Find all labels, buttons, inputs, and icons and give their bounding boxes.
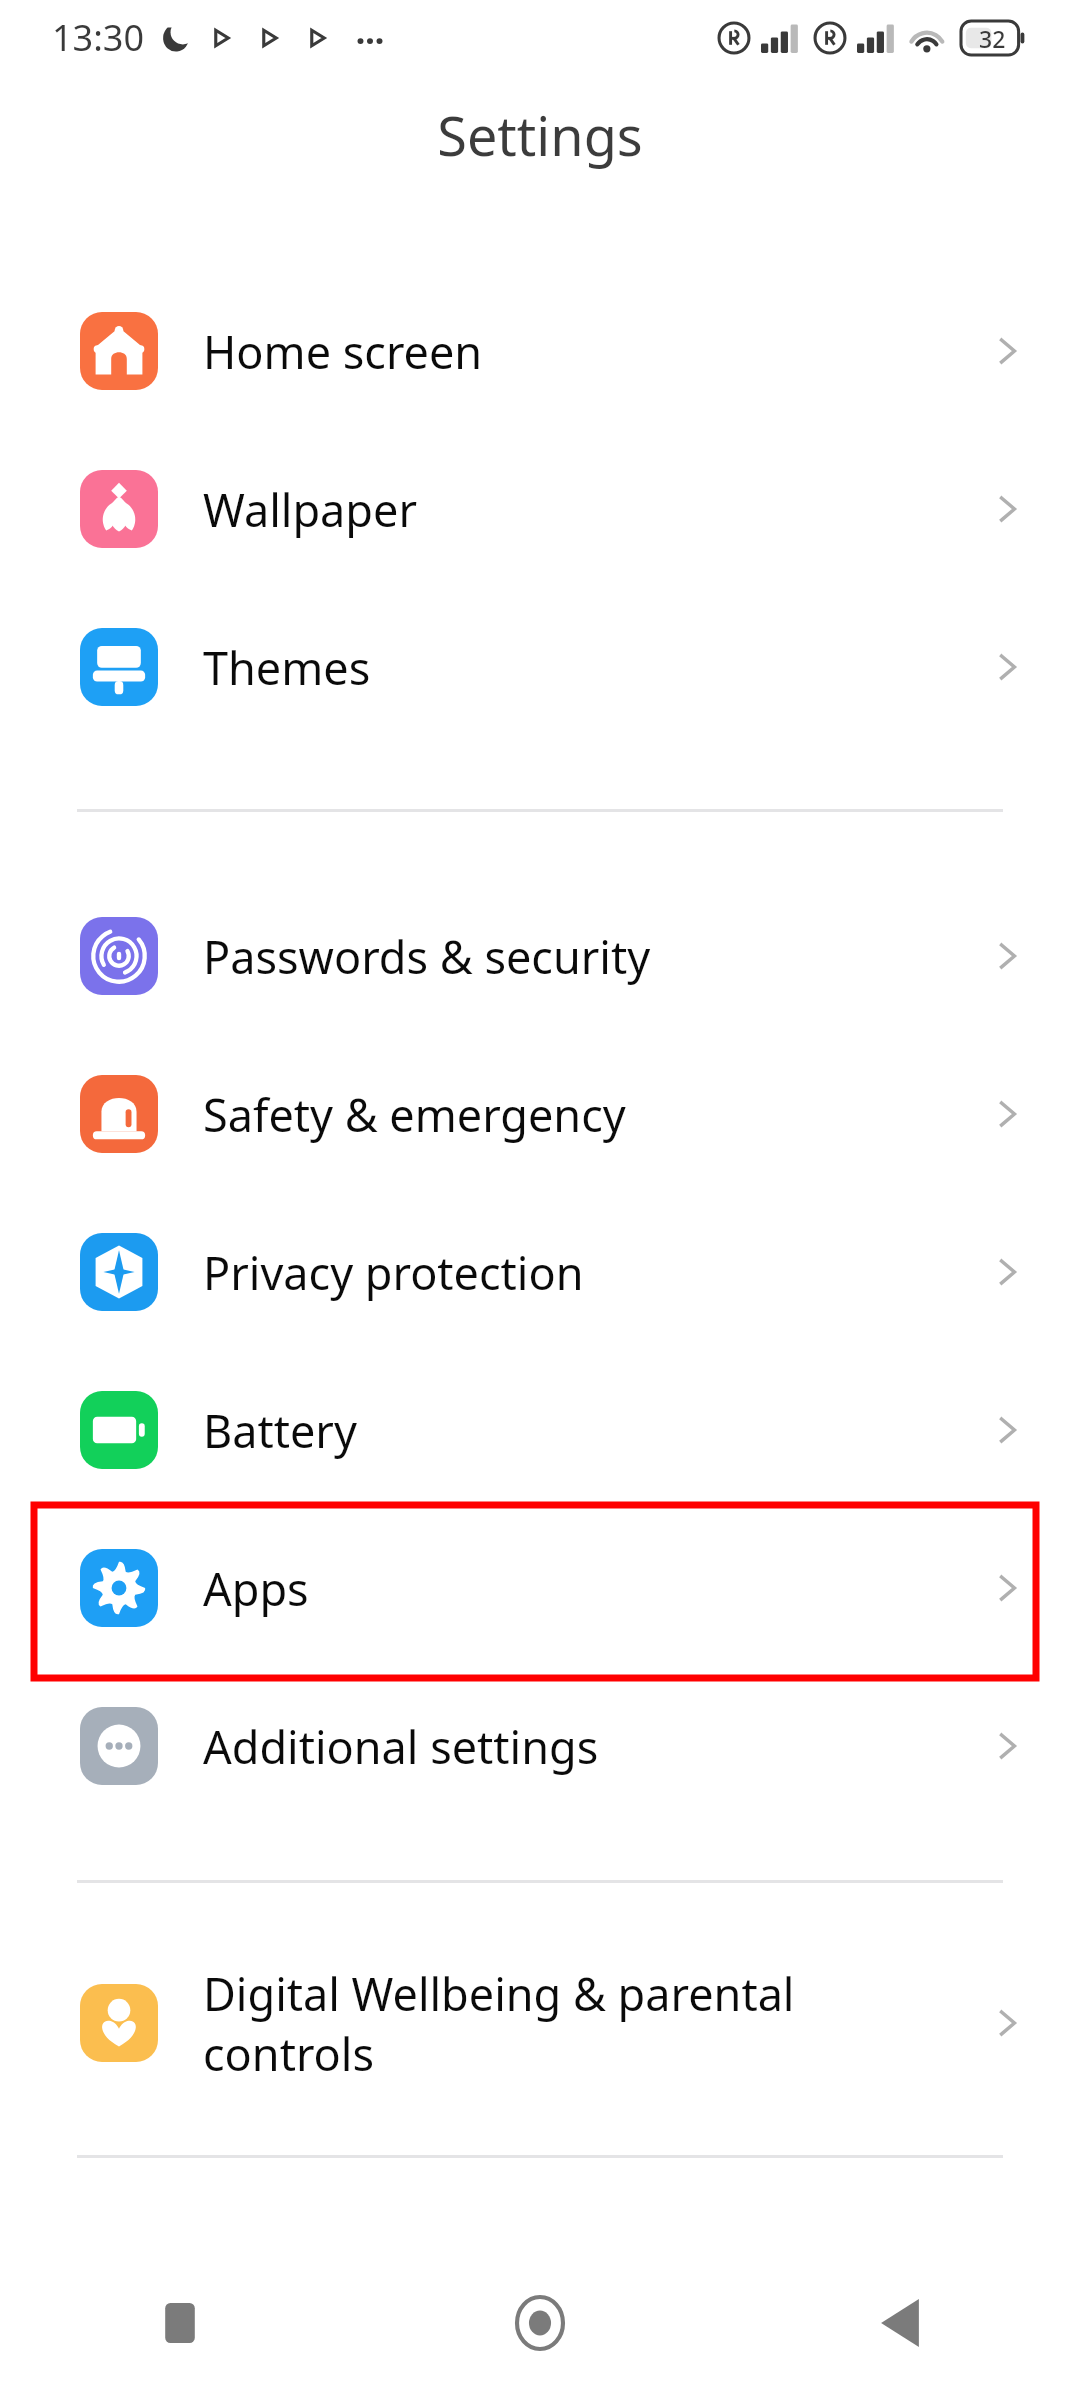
button[interactable]: Additional settings xyxy=(0,1667,1080,1825)
button[interactable]: Back xyxy=(720,2245,1080,2400)
staticText: Settings xyxy=(437,98,643,172)
staticText: Privacy protection xyxy=(203,1242,584,1303)
button[interactable]: Home xyxy=(360,2245,720,2400)
staticText: Battery xyxy=(203,1400,357,1461)
button[interactable]: Privacy protection xyxy=(0,1193,1080,1351)
staticText: Apps xyxy=(203,1558,309,1619)
staticText: Home screen xyxy=(203,321,483,382)
staticText: 13:30 xyxy=(52,13,145,62)
button[interactable]: Passwords & security xyxy=(0,877,1080,1035)
button[interactable]: Themes xyxy=(0,588,1080,746)
button[interactable]: Wallpaper xyxy=(0,430,1080,588)
button[interactable]: Home screen xyxy=(0,272,1080,430)
button[interactable]: Battery xyxy=(0,1351,1080,1509)
staticText: 32 xyxy=(979,23,1006,54)
staticText: Wallpaper xyxy=(203,479,417,540)
staticText: Passwords & security xyxy=(203,926,651,987)
button[interactable]: Apps xyxy=(0,1509,1080,1667)
staticText: Themes xyxy=(203,637,371,698)
staticText: Safety & emergency xyxy=(203,1084,626,1145)
button[interactable]: Digital Wellbeing & parental controls xyxy=(0,1943,1080,2103)
button[interactable]: Recent apps xyxy=(0,2245,360,2400)
staticText: Digital Wellbeing & parental controls xyxy=(203,1963,795,2084)
button[interactable]: Safety & emergency xyxy=(0,1035,1080,1193)
staticText: Additional settings xyxy=(203,1716,599,1777)
